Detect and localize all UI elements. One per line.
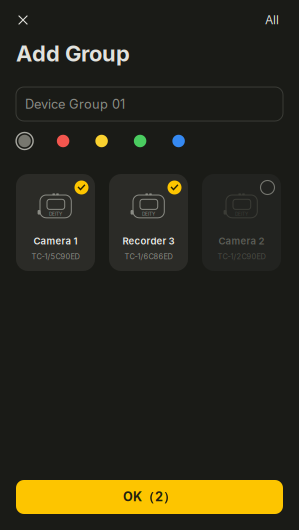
button[interactable]: OK（2） xyxy=(16,480,283,514)
button[interactable]: DEITY xyxy=(202,174,281,271)
button[interactable]: DEITY xyxy=(16,174,95,271)
staticText: DEITY xyxy=(49,211,62,217)
staticText: DEITY xyxy=(142,211,155,217)
staticText: Device Group 01 xyxy=(25,96,125,112)
button[interactable]: DEITY xyxy=(109,174,188,271)
button[interactable]: Green xyxy=(131,132,149,150)
staticText: All xyxy=(265,13,279,27)
button[interactable]: Yellow xyxy=(93,132,111,150)
button[interactable]: All xyxy=(257,6,287,34)
button[interactable]: Blue xyxy=(170,132,188,150)
button[interactable]: Close xyxy=(8,5,38,35)
staticText: TC-1/6C86ED xyxy=(124,252,172,261)
staticText: Add Group xyxy=(16,40,130,67)
staticText: TC-1/5C90ED xyxy=(31,252,79,261)
staticText: OK（2） xyxy=(123,489,176,505)
button[interactable]: Grey xyxy=(16,132,34,150)
staticText: Recorder 3 xyxy=(122,235,174,247)
staticText: Camera 1 xyxy=(33,235,77,247)
staticText: Camera 2 xyxy=(218,235,264,247)
button[interactable]: Red xyxy=(54,132,72,150)
staticText: DEITY xyxy=(235,211,248,217)
staticText: TC-1/2C90ED xyxy=(217,252,265,261)
